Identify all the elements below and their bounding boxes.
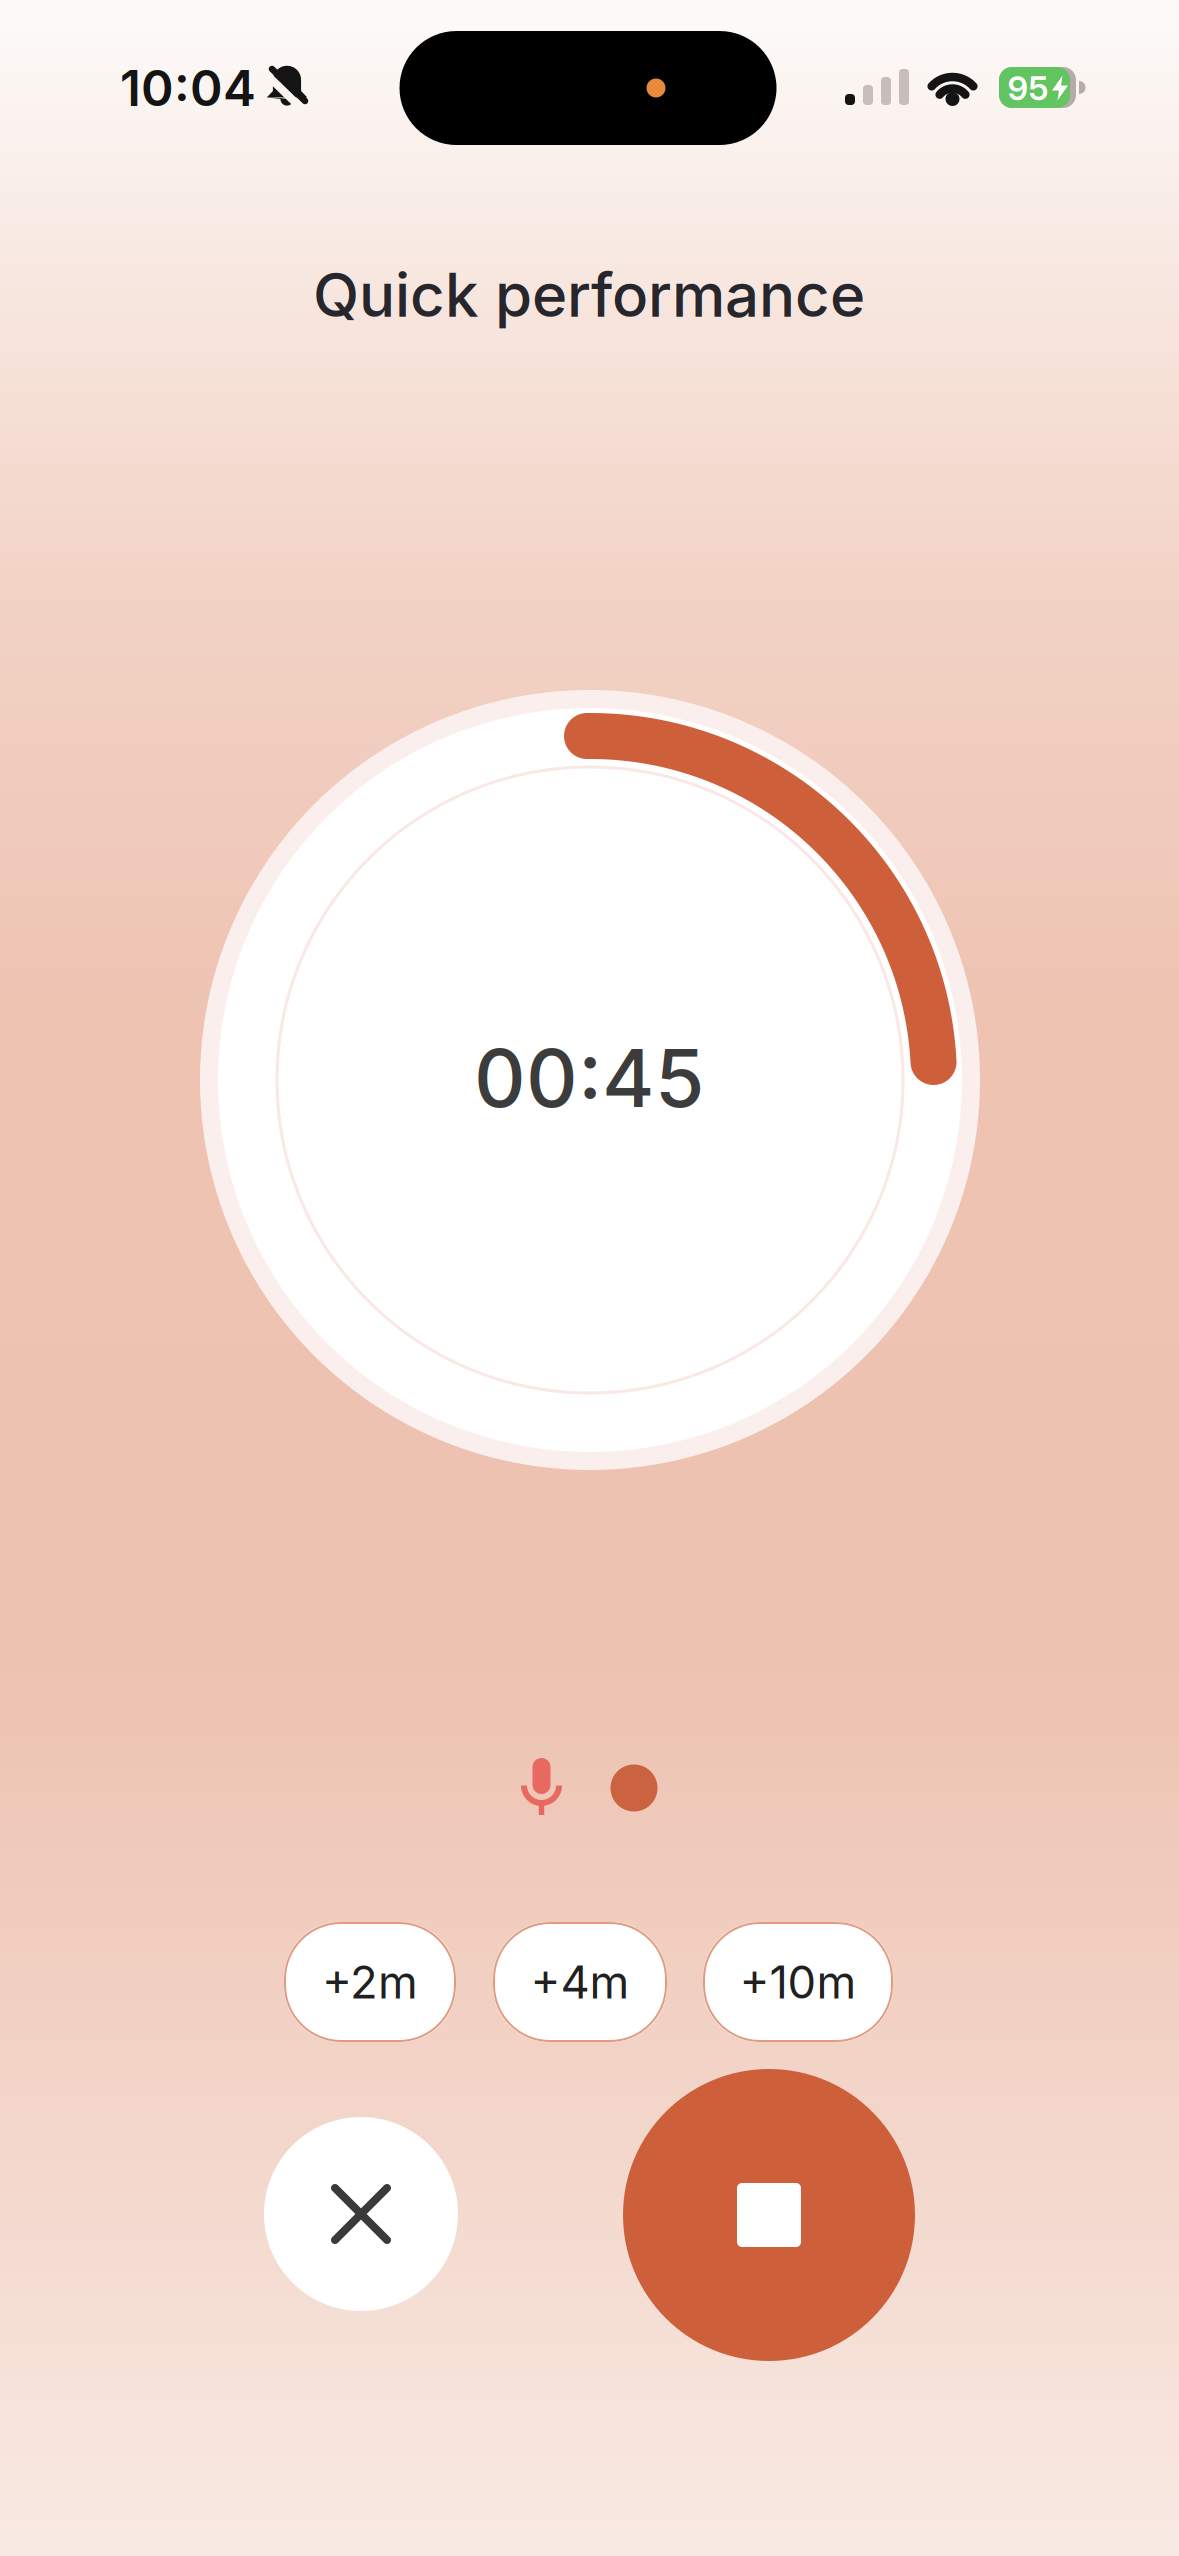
button[interactable]: +10m (703, 1922, 893, 2042)
staticText: 00:45 (474, 1030, 704, 1126)
button[interactable]: Stop (623, 2069, 915, 2361)
staticText: 95 (1007, 68, 1048, 108)
button[interactable]: +2m (284, 1922, 456, 2042)
button[interactable]: Cancel (264, 2117, 458, 2311)
staticText: 10:04 (120, 58, 256, 118)
staticText: Quick performance (313, 259, 865, 331)
staticText: +2m (322, 1955, 418, 2009)
button[interactable]: +4m (493, 1922, 667, 2042)
staticText: +4m (530, 1955, 629, 2009)
staticText: +10m (739, 1955, 856, 2009)
